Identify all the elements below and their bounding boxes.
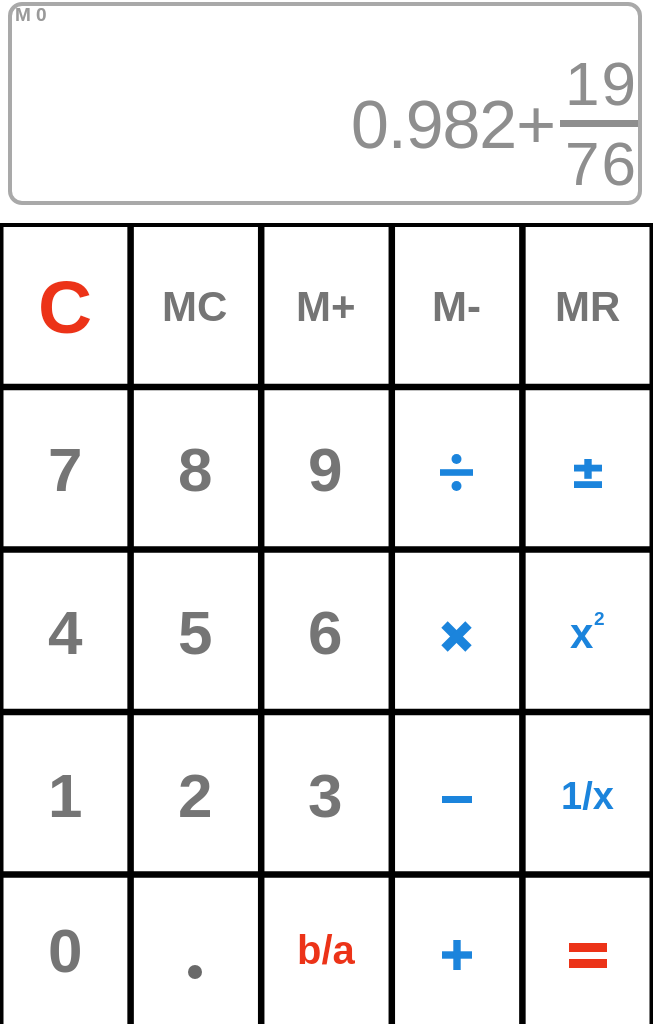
- staticText: 8: [178, 435, 213, 504]
- staticText: b/a: [297, 928, 355, 973]
- staticText: 3: [308, 761, 343, 830]
- button[interactable]: M 0: [8, 2, 642, 205]
- staticText: M-: [432, 283, 481, 330]
- button[interactable]: 3: [260, 714, 391, 877]
- staticText: 1: [48, 761, 83, 830]
- button[interactable]: x: [522, 551, 653, 714]
- staticText: 2: [594, 608, 605, 629]
- button[interactable]: 1/x: [522, 714, 653, 877]
- button[interactable]: 2: [130, 714, 260, 877]
- staticText: 7: [48, 435, 83, 504]
- button[interactable]: 6: [260, 551, 391, 714]
- staticText: 19: [565, 49, 638, 118]
- button[interactable]: 7: [0, 388, 130, 551]
- button[interactable]: [391, 388, 522, 551]
- button[interactable]: [522, 877, 653, 1024]
- staticText: 5: [178, 598, 213, 667]
- staticText: 2: [178, 761, 213, 830]
- button[interactable]: 4: [0, 551, 130, 714]
- staticText: M 0: [15, 4, 47, 25]
- staticText: 1/x: [561, 775, 614, 817]
- button[interactable]: 9: [260, 388, 391, 551]
- button[interactable]: MC: [130, 225, 260, 388]
- button[interactable]: 8: [130, 388, 260, 551]
- staticText: 76: [565, 129, 638, 198]
- staticText: 9: [308, 435, 343, 504]
- staticText: MR: [555, 283, 621, 330]
- button[interactable]: 1: [0, 714, 130, 877]
- button[interactable]: [522, 388, 653, 551]
- staticText: 0: [48, 916, 83, 985]
- button[interactable]: MR: [522, 225, 653, 388]
- button[interactable]: [391, 551, 522, 714]
- button[interactable]: 0: [0, 877, 130, 1024]
- staticText: 0.982+: [351, 86, 555, 162]
- button[interactable]: [391, 714, 522, 877]
- button[interactable]: 5: [130, 551, 260, 714]
- button[interactable]: [391, 877, 522, 1024]
- staticText: 6: [308, 598, 343, 667]
- staticText: C: [38, 265, 93, 349]
- staticText: x: [570, 610, 594, 657]
- button[interactable]: M-: [391, 225, 522, 388]
- staticText: M+: [296, 283, 356, 330]
- button[interactable]: M+: [260, 225, 391, 388]
- staticText: MC: [162, 283, 228, 330]
- staticText: 4: [48, 598, 83, 667]
- button[interactable]: b/a: [260, 877, 391, 1024]
- button[interactable]: [130, 877, 260, 1024]
- button[interactable]: C: [0, 225, 130, 388]
